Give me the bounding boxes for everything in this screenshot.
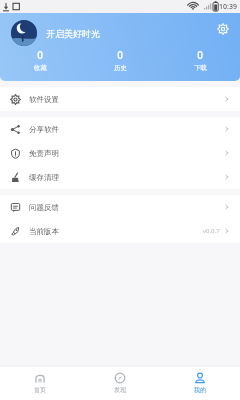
button[interactable]: 问题反馈 bbox=[0, 195, 240, 219]
button[interactable]: 免责声明 bbox=[0, 141, 240, 165]
staticText: 问题反馈 bbox=[29, 203, 59, 212]
staticText: 免责声明 bbox=[29, 149, 59, 158]
button[interactable]: 发现 bbox=[80, 366, 160, 400]
staticText: 我的 bbox=[194, 386, 206, 394]
staticText: 0 bbox=[117, 48, 123, 62]
staticText: 10:39 bbox=[219, 2, 237, 12]
button[interactable]: 缓存清理 bbox=[0, 165, 240, 189]
button[interactable]: 0 bbox=[160, 48, 240, 72]
button[interactable]: Avatar bbox=[11, 20, 37, 46]
button[interactable]: 0 bbox=[80, 48, 160, 72]
staticText: 0 bbox=[197, 48, 203, 62]
staticText: 当前版本 bbox=[29, 227, 59, 236]
staticText: 收藏 bbox=[34, 64, 47, 72]
staticText: 历史 bbox=[114, 64, 127, 72]
staticText: 发现 bbox=[114, 386, 126, 394]
staticText: 下载 bbox=[194, 64, 207, 72]
button[interactable]: Settings bbox=[214, 20, 232, 38]
button[interactable]: 当前版本 bbox=[0, 219, 240, 243]
staticText: 缓存清理 bbox=[29, 173, 59, 182]
button[interactable]: 首页 bbox=[0, 366, 80, 400]
staticText: 开启美好时光 bbox=[46, 28, 100, 39]
staticText: 分享软件 bbox=[29, 125, 59, 134]
button[interactable]: 软件设置 bbox=[0, 87, 240, 111]
staticText: 软件设置 bbox=[29, 95, 59, 104]
staticText: v0.0.7 bbox=[203, 227, 220, 235]
button[interactable]: 我的 bbox=[160, 366, 240, 400]
staticText: 0 bbox=[37, 48, 43, 62]
staticText: 首页 bbox=[34, 386, 46, 394]
button[interactable]: 分享软件 bbox=[0, 117, 240, 141]
button[interactable]: 0 bbox=[0, 48, 80, 72]
